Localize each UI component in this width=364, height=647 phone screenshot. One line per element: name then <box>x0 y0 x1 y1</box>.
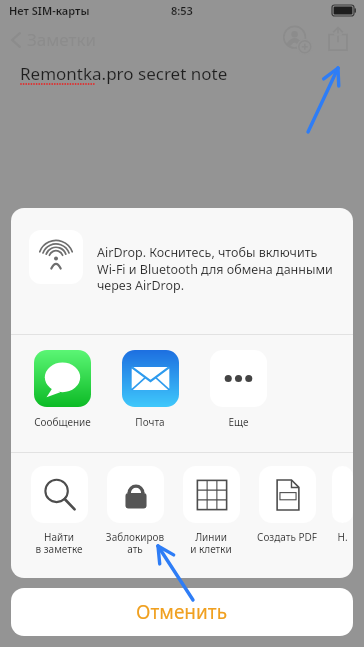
staticText: Н. <box>337 530 348 544</box>
staticText: Найти в заметке <box>35 530 83 556</box>
button[interactable]: Сообщение <box>31 335 93 429</box>
button[interactable]: Создать PDF <box>256 453 318 544</box>
button[interactable]: Линии и клетки <box>180 453 242 556</box>
staticText: Отменить <box>136 599 228 625</box>
staticText: Сообщение <box>34 415 91 429</box>
staticText: Линии и клетки <box>190 530 232 556</box>
button[interactable]: Add People <box>282 24 312 54</box>
button[interactable]: Найти в заметке <box>28 453 90 556</box>
staticText: Почта <box>135 415 165 429</box>
staticText: 8:53 <box>171 3 193 18</box>
button[interactable]: AirDrop. Коснитесь, чтобы включить Wi-Fi… <box>11 208 353 334</box>
staticText: Заблокировать <box>104 530 166 556</box>
staticText: AirDrop. Коснитесь, чтобы включить Wi-Fi… <box>97 244 337 293</box>
staticText: Создать PDF <box>257 530 317 544</box>
button[interactable]: Отменить <box>11 588 353 636</box>
button[interactable]: Еще <box>207 335 269 429</box>
staticText: Еще <box>228 415 249 429</box>
button[interactable]: Н. <box>332 453 353 544</box>
button[interactable]: Заблокировать <box>104 453 166 556</box>
staticText: Нет SIM-карты <box>9 3 90 18</box>
staticText: Remontka.pro secret note <box>20 62 228 85</box>
button[interactable]: Почта <box>119 335 181 429</box>
